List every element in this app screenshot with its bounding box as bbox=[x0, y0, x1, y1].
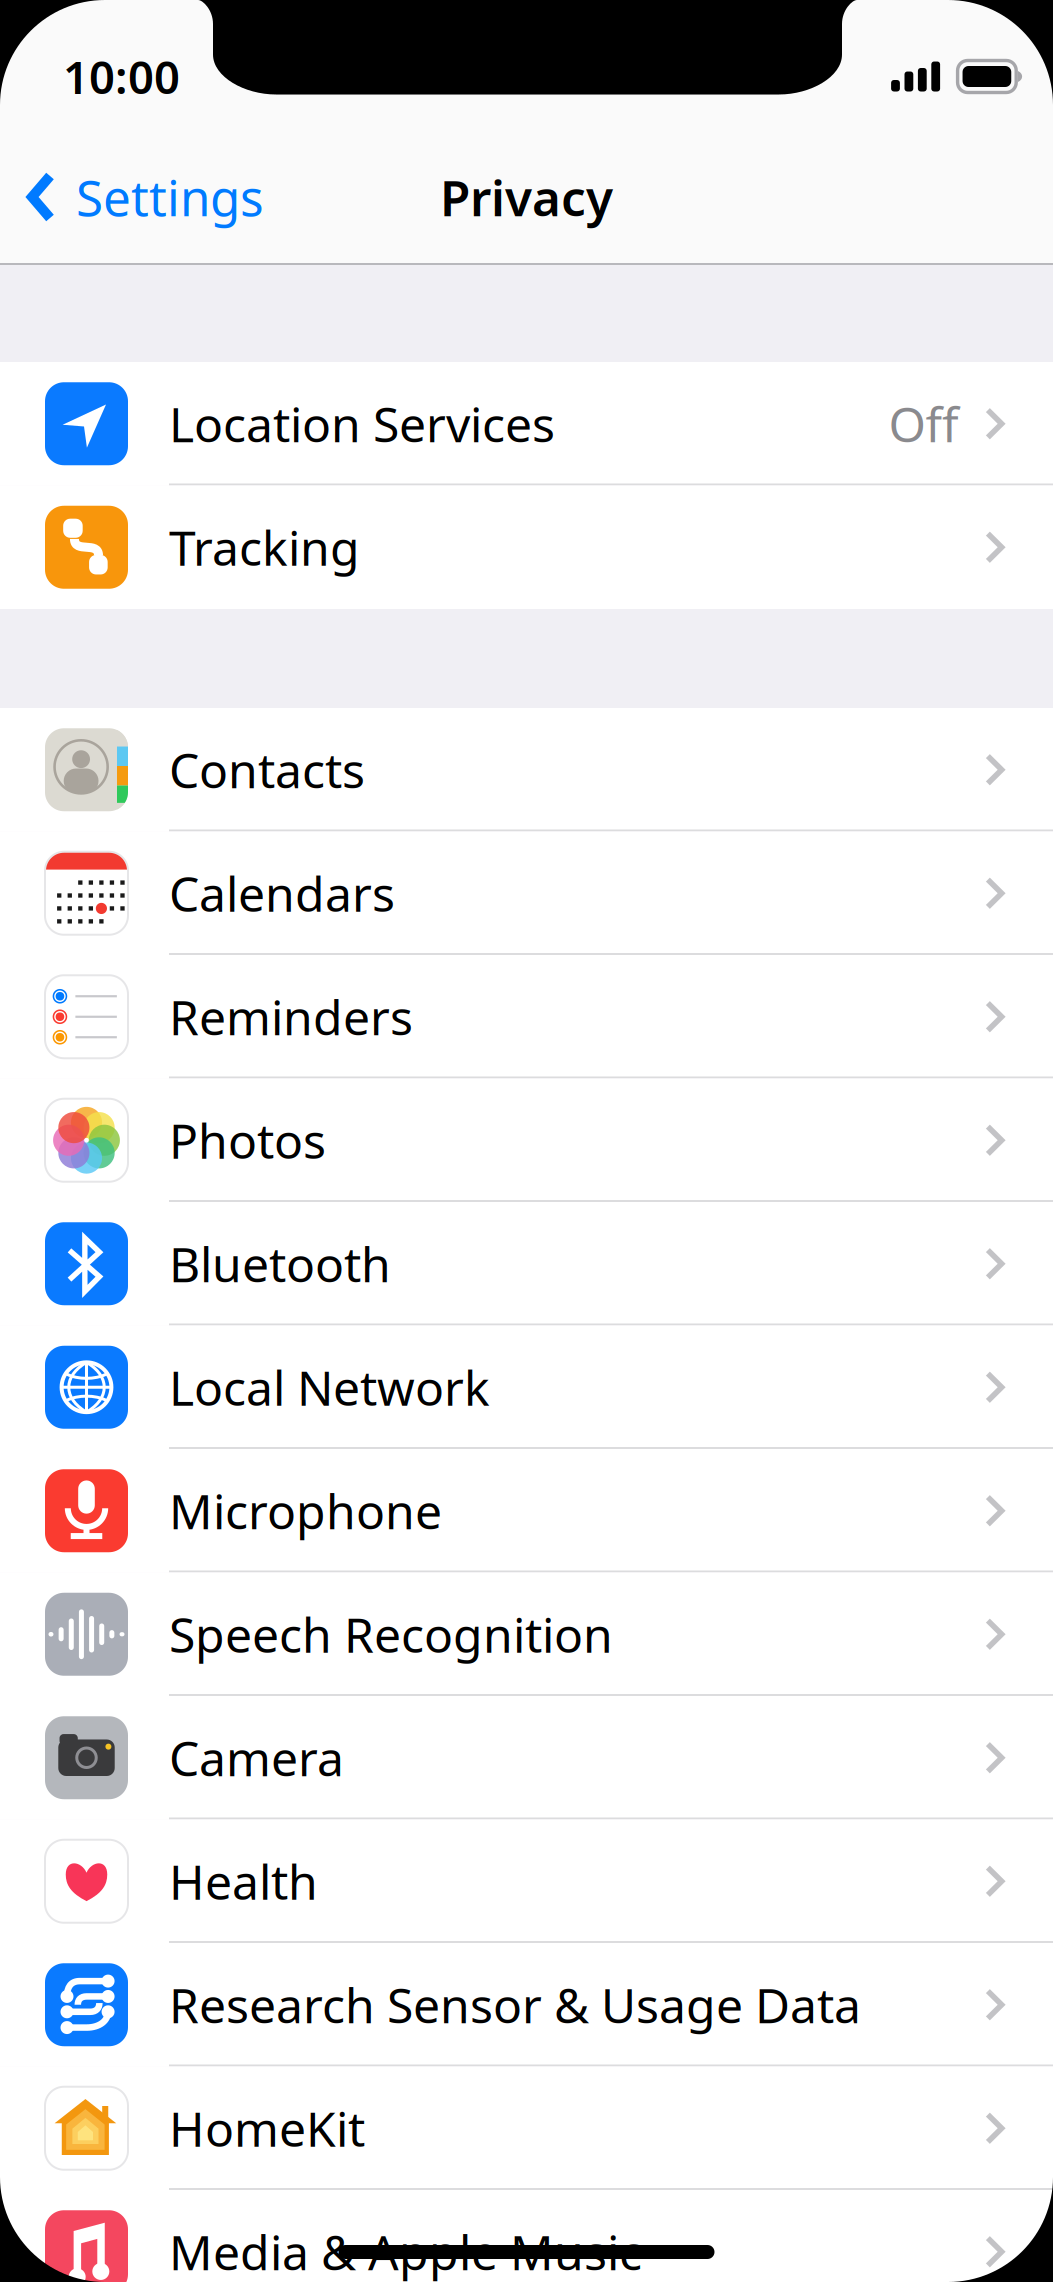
staticText: Media & Apple Music bbox=[169, 2220, 642, 2282]
staticText: Off bbox=[888, 392, 958, 456]
button[interactable]: Settings bbox=[0, 131, 282, 263]
button[interactable]: Research Sensor & Usage Data bbox=[0, 1943, 1053, 2066]
staticText: Calendars bbox=[169, 861, 395, 925]
staticText: Location Services bbox=[169, 392, 555, 456]
staticText: Microphone bbox=[169, 1479, 442, 1543]
button[interactable]: Camera bbox=[0, 1696, 1053, 1819]
staticText: Reminders bbox=[169, 985, 413, 1049]
staticText: 10:00 bbox=[63, 46, 180, 107]
staticText: HomeKit bbox=[169, 2096, 365, 2160]
staticText: Local Network bbox=[169, 1355, 490, 1419]
staticText: Settings bbox=[76, 164, 264, 230]
button[interactable]: Location Services bbox=[0, 362, 1053, 485]
staticText: Photos bbox=[169, 1108, 326, 1172]
button[interactable]: Local Network bbox=[0, 1325, 1053, 1449]
button[interactable]: Microphone bbox=[0, 1449, 1053, 1572]
button[interactable]: Speech Recognition bbox=[0, 1572, 1053, 1696]
button[interactable]: Contacts bbox=[0, 708, 1053, 831]
button[interactable]: Health bbox=[0, 1819, 1053, 1943]
staticText: Research Sensor & Usage Data bbox=[169, 1973, 861, 2037]
staticText: Speech Recognition bbox=[169, 1602, 613, 1666]
staticText: Camera bbox=[169, 1726, 344, 1790]
button[interactable]: Tracking bbox=[0, 485, 1053, 609]
button[interactable]: Bluetooth bbox=[0, 1202, 1053, 1325]
staticText: Health bbox=[169, 1849, 318, 1913]
button[interactable]: HomeKit bbox=[0, 2066, 1053, 2190]
button[interactable]: Photos bbox=[0, 1078, 1053, 1202]
staticText: Privacy bbox=[440, 164, 613, 230]
button[interactable]: Reminders bbox=[0, 955, 1053, 1078]
button[interactable]: Media & Apple Music bbox=[0, 2190, 1053, 2282]
staticText: Contacts bbox=[169, 738, 365, 802]
button[interactable]: Calendars bbox=[0, 831, 1053, 955]
staticText: Tracking bbox=[169, 515, 360, 579]
staticText: Bluetooth bbox=[169, 1232, 391, 1296]
